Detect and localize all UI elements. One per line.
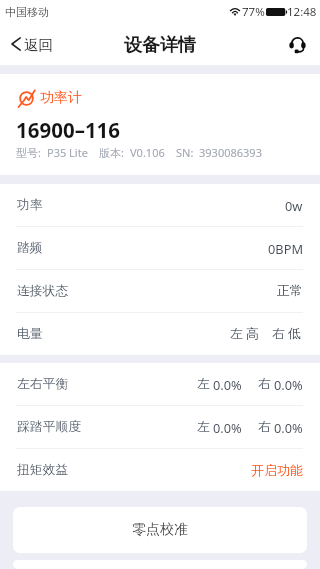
staticText: 返回 [24, 36, 53, 54]
button[interactable]: 返回 [0, 30, 63, 60]
button[interactable]: 踩踏平顺度 [0, 406, 320, 448]
staticText: 0BPM [268, 240, 303, 257]
staticText: 0.0% [274, 419, 303, 436]
button[interactable]: 功率 [0, 184, 320, 226]
staticText: 0.0% [213, 419, 242, 436]
staticText: 版本: [99, 145, 124, 160]
staticText: 左 [230, 326, 243, 342]
button[interactable]: 扭矩效益 [0, 449, 320, 491]
staticText: 功率 [17, 197, 43, 213]
staticText: 左 [197, 376, 210, 392]
staticText: 中国移动 [5, 5, 49, 19]
staticText: 扭矩效益 [17, 462, 69, 478]
staticText: 电量 [17, 326, 43, 342]
staticText: SN: [176, 145, 194, 160]
button[interactable]: 电量 [0, 313, 320, 355]
button[interactable]: 左右平衡 [0, 363, 320, 405]
staticText: 右 [272, 326, 285, 342]
staticText: V0.106 [130, 145, 165, 160]
staticText: 右 [258, 419, 271, 435]
staticText: 12:48 [287, 4, 317, 20]
button[interactable]: 连接状态 [0, 270, 320, 312]
button[interactable]: 踏频 [0, 227, 320, 269]
staticText: 零点校准 [132, 521, 188, 539]
staticText: 功率计 [40, 89, 82, 107]
staticText: 0.0% [274, 376, 303, 393]
staticText: P35 Lite [47, 145, 88, 160]
staticText: 踩踏平顺度 [17, 419, 81, 435]
staticText: 踏频 [17, 240, 43, 256]
staticText: 正常 [277, 283, 303, 299]
staticText: 设备详情 [124, 34, 196, 57]
staticText: 开启功能 [251, 462, 303, 478]
staticText: 0.0% [213, 376, 242, 393]
staticText: 连接状态 [17, 283, 69, 299]
staticText: 3930086393 [199, 145, 262, 160]
button[interactable]: 零点校准 [13, 507, 307, 553]
staticText: 16900–116 [16, 116, 121, 144]
staticText: 左 [197, 419, 210, 435]
staticText: 右 [258, 376, 271, 392]
staticText: 0w [285, 197, 303, 214]
staticText: 低 [288, 326, 301, 342]
staticText: 型号: [16, 145, 41, 160]
button[interactable]: Customer service [283, 30, 312, 59]
staticText: 77% [242, 4, 265, 20]
staticText: 高 [246, 326, 259, 342]
staticText: 左右平衡 [17, 376, 69, 392]
